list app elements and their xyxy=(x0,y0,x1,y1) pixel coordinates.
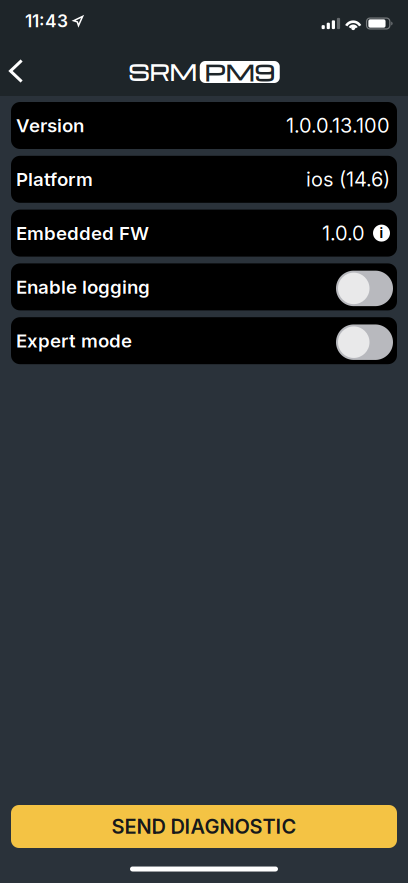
button[interactable]: Expert mode xyxy=(11,317,397,364)
staticText: PM9 xyxy=(204,57,275,87)
button[interactable]: Enable logging xyxy=(11,263,397,310)
staticText: Platform xyxy=(16,168,93,191)
staticText: 11:43 xyxy=(25,10,68,31)
staticText: Embedded FW xyxy=(16,222,149,244)
staticText: Version xyxy=(16,114,84,137)
button[interactable]: SEND DIAGNOSTIC xyxy=(11,805,397,848)
staticText: i xyxy=(379,225,383,241)
staticText: Expert mode xyxy=(16,329,132,352)
staticText: SRM xyxy=(128,58,196,86)
staticText: 1.0.0 xyxy=(322,221,365,245)
button[interactable]: Firmware info xyxy=(365,217,390,250)
staticText: 1.0.0.13.100 xyxy=(286,113,390,138)
staticText: Enable logging xyxy=(16,276,150,298)
staticText: SEND DIAGNOSTIC xyxy=(111,814,296,839)
button[interactable]: Back xyxy=(0,46,37,92)
staticText: ios (14.6) xyxy=(306,167,390,191)
